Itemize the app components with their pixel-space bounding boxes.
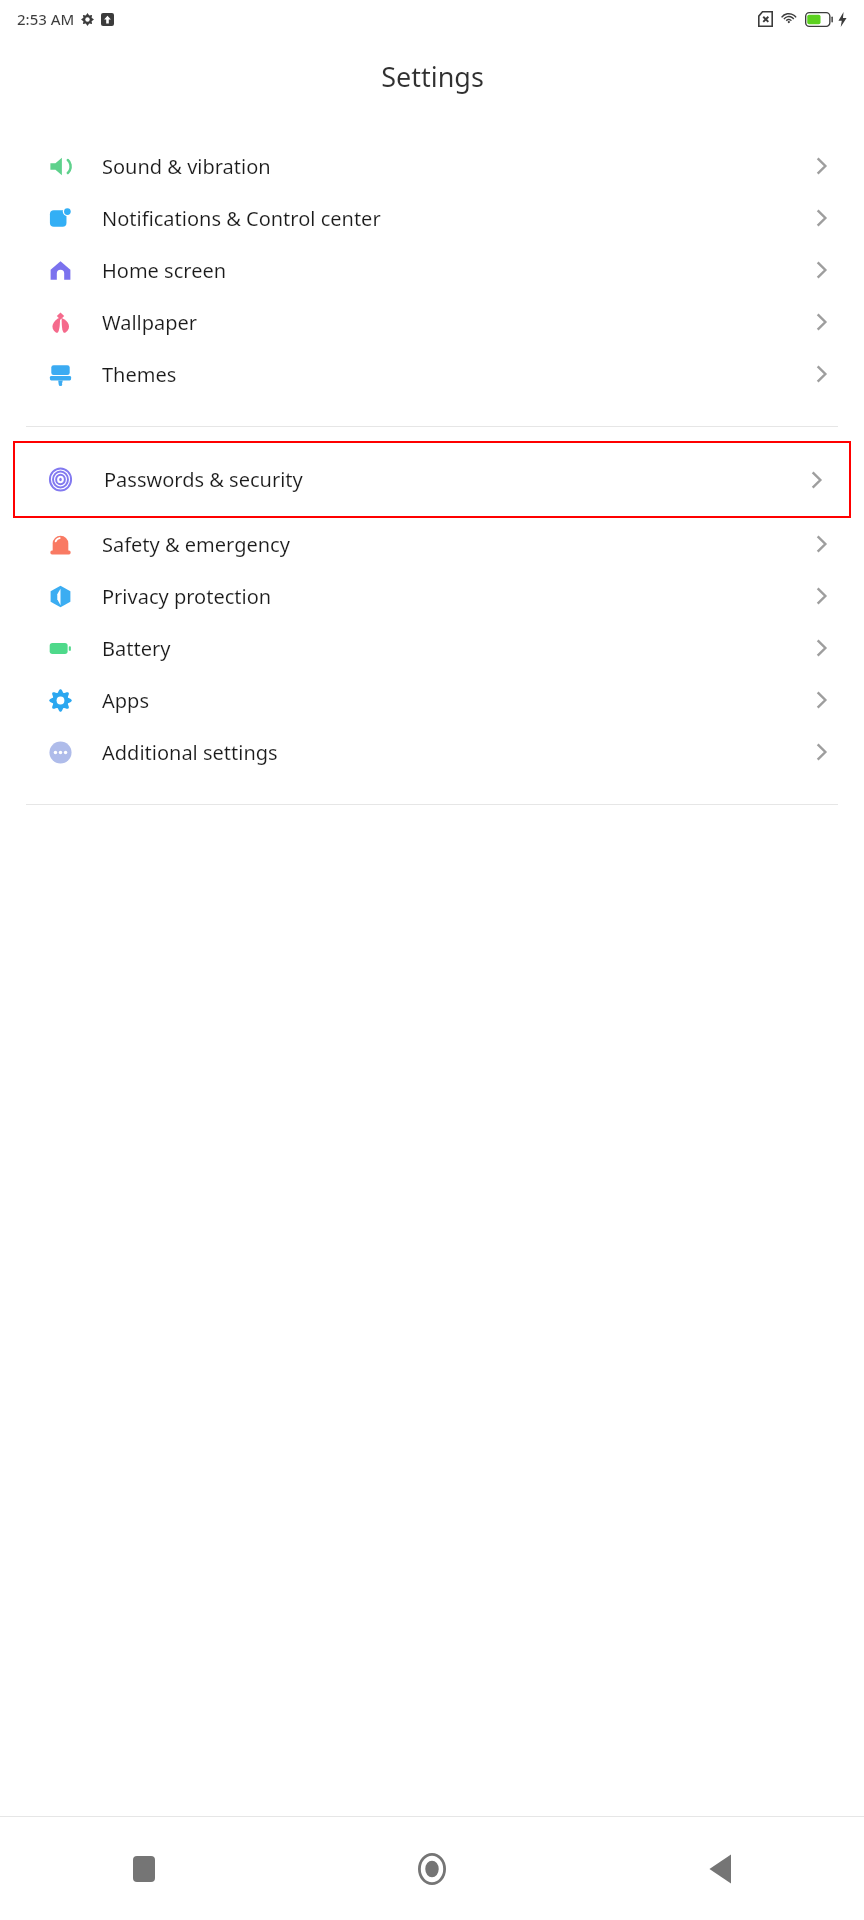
button[interactable]: Privacy protection: [0, 570, 864, 622]
staticText: Wallpaper: [102, 309, 198, 336]
button[interactable]: Themes: [0, 348, 864, 400]
staticText: Apps: [102, 687, 149, 714]
button[interactable]: Additional settings: [0, 726, 864, 778]
staticText: Themes: [102, 361, 177, 388]
button[interactable]: Battery: [0, 622, 864, 674]
button[interactable]: Wallpaper: [0, 296, 864, 348]
button[interactable]: Sound & vibration: [0, 140, 864, 192]
staticText: Battery: [102, 635, 171, 662]
button[interactable]: Notifications & Control center: [0, 192, 864, 244]
button[interactable]: Apps: [0, 674, 864, 726]
staticText: Passwords & security: [104, 466, 303, 493]
staticText: 2:53 AM: [17, 9, 75, 29]
staticText: Safety & emergency: [102, 531, 290, 558]
button[interactable]: Safety & emergency: [0, 518, 864, 570]
staticText: Settings: [381, 58, 484, 95]
staticText: Home screen: [102, 257, 227, 284]
staticText: Privacy protection: [102, 583, 272, 610]
button[interactable]: Passwords & security: [15, 443, 849, 516]
staticText: Sound & vibration: [102, 153, 271, 180]
staticText: Additional settings: [102, 739, 278, 766]
staticText: Notifications & Control center: [102, 205, 381, 232]
button[interactable]: Home: [288, 1817, 576, 1920]
button[interactable]: Recent apps: [0, 1817, 288, 1920]
button[interactable]: Home screen: [0, 244, 864, 296]
button[interactable]: Back: [576, 1817, 864, 1920]
